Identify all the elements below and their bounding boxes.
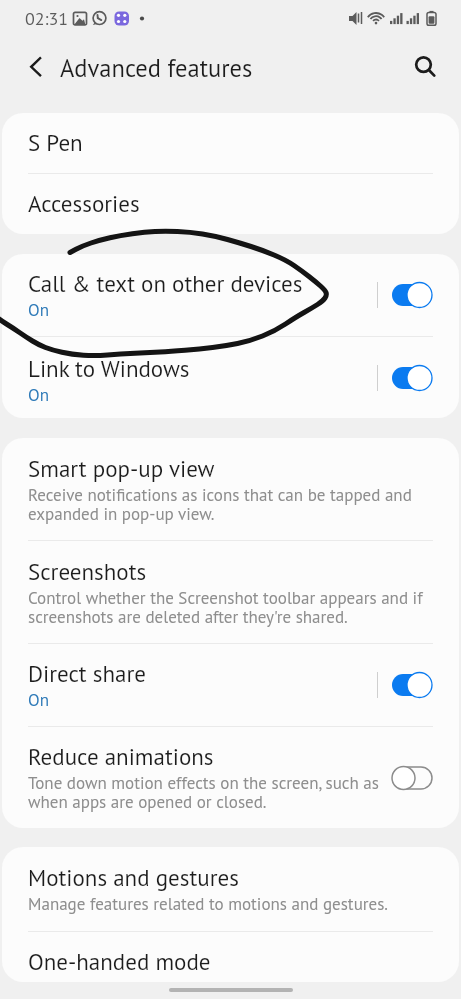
staticText: One-handed mode <box>28 947 211 977</box>
staticText: S Pen <box>28 128 83 158</box>
button[interactable]: Switch on <box>392 281 433 309</box>
staticText: On <box>28 384 49 406</box>
button[interactable]: Accessories <box>2 174 459 234</box>
staticText: Screenshots <box>28 557 147 587</box>
staticText: On <box>28 689 49 711</box>
staticText: Direct share <box>28 659 146 689</box>
button[interactable]: One-handed mode <box>2 932 459 982</box>
staticText: On <box>28 299 49 321</box>
button[interactable]: Switch off <box>392 764 433 792</box>
staticText: Advanced features <box>60 52 253 84</box>
button[interactable]: Switch on <box>392 671 433 699</box>
button[interactable]: Smart pop-up view <box>2 438 459 540</box>
staticText: Receive notifications as icons that can … <box>28 484 412 525</box>
staticText: Smart pop-up view <box>28 454 215 484</box>
staticText: Manage features related to motions and g… <box>28 893 389 915</box>
button[interactable]: Reduce animations <box>2 727 459 828</box>
button[interactable]: Screenshots <box>2 541 459 643</box>
staticText: Motions and gestures <box>28 863 239 893</box>
staticText: Control whether the Screenshot toolbar a… <box>28 587 423 628</box>
button[interactable]: Back <box>13 46 58 91</box>
button[interactable]: Motions and gestures <box>2 847 459 931</box>
staticText: Tone down motion effects on the screen, … <box>28 772 379 813</box>
staticText: Call & text on other devices <box>28 269 303 299</box>
staticText: Reduce animations <box>28 742 214 772</box>
button[interactable]: Switch on <box>392 364 433 392</box>
button[interactable]: Call & text on other devices <box>2 254 459 336</box>
button[interactable]: S Pen <box>2 113 459 173</box>
button[interactable]: Link to Windows <box>2 337 459 418</box>
staticText: Accessories <box>28 189 140 219</box>
staticText: 02:31 <box>25 7 69 30</box>
staticText: Link to Windows <box>28 354 190 384</box>
button[interactable]: Direct share <box>2 644 459 726</box>
button[interactable]: Search <box>401 42 446 87</box>
